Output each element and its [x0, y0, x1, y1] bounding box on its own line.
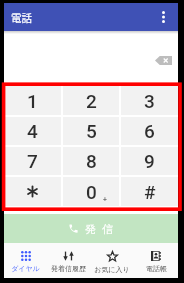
button[interactable]: Backspace: [150, 50, 176, 70]
button[interactable]: 5: [63, 117, 119, 145]
button[interactable]: 8: [63, 147, 119, 175]
button[interactable]: 0: [63, 177, 119, 206]
button[interactable]: [4, 177, 61, 206]
button[interactable]: 6: [121, 117, 178, 145]
staticText: +: [103, 196, 107, 204]
staticText: 発 信: [85, 221, 115, 236]
button[interactable]: お気に入り: [90, 243, 134, 278]
button[interactable]: 2: [63, 86, 119, 115]
staticText: 0: [86, 181, 97, 203]
staticText: #: [144, 181, 156, 203]
button[interactable]: ダイヤル: [4, 243, 47, 278]
staticText: 5: [86, 120, 97, 142]
staticText: 発着信履歴: [51, 264, 86, 273]
staticText: 6: [144, 120, 155, 142]
staticText: 7: [27, 150, 38, 172]
staticText: 2: [86, 90, 97, 112]
button[interactable]: 4: [4, 117, 61, 145]
button[interactable]: 7: [4, 147, 61, 175]
staticText: 電話帳: [146, 264, 167, 273]
button[interactable]: More options: [153, 7, 173, 27]
staticText: ダイヤル: [11, 264, 40, 273]
staticText: 9: [144, 150, 155, 172]
staticText: 1: [27, 90, 38, 112]
button[interactable]: 9: [121, 147, 178, 175]
button[interactable]: #: [121, 177, 178, 206]
button[interactable]: 3: [121, 86, 178, 115]
button[interactable]: 発着信履歴: [47, 243, 90, 278]
staticText: 電話: [11, 10, 32, 25]
staticText: 8: [86, 150, 97, 172]
staticText: 3: [144, 90, 155, 112]
staticText: お気に入り: [94, 265, 130, 274]
button[interactable]: 電話帳: [134, 243, 178, 278]
button[interactable]: 1: [4, 86, 61, 115]
button[interactable]: 発 信: [4, 214, 178, 243]
staticText: 4: [27, 120, 38, 142]
